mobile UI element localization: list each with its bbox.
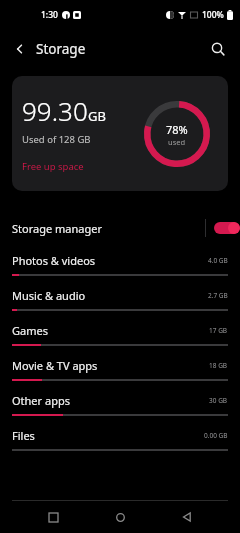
staticText: 100% [202,9,224,21]
staticText: GB [88,107,106,125]
button[interactable]: Home [106,503,134,531]
button[interactable]: Back [173,503,201,531]
staticText: 2.7 GB [208,291,228,300]
staticText: 30 GB [209,396,228,405]
staticText: 78% [166,122,188,137]
button[interactable]: Other apps [0,385,240,420]
button[interactable]: Photos & videos [0,245,240,280]
button[interactable]: Files [0,420,240,455]
button[interactable]: Music & audio [0,280,240,315]
staticText: Movie & TV apps [12,358,98,373]
staticText: 17 GB [209,326,228,335]
button[interactable]: Games [0,315,240,350]
staticText: Storage [36,40,86,58]
button[interactable]: Movie & TV apps [0,350,240,385]
staticText: used [168,137,186,147]
staticText: Photos & videos [12,253,96,268]
staticText: Storage manager [12,221,102,236]
button[interactable]: Search [204,35,232,63]
staticText: Music & audio [12,288,86,303]
staticText: Games [12,323,48,338]
button[interactable]: Storage manager toggle [214,222,240,234]
staticText: 18 GB [209,361,228,370]
button[interactable]: Storage manager [0,211,240,245]
staticText: Free up space [22,160,84,173]
button[interactable]: Navigate up [6,35,34,63]
staticText: Other apps [12,393,70,408]
staticText: Used of 128 GB [22,133,91,146]
staticText: 0.00 GB [204,431,228,440]
button[interactable]: Free up space [22,160,84,173]
button[interactable]: 99.30 [12,76,228,191]
staticText: 4.0 GB [208,256,228,265]
button[interactable]: Recent apps [39,503,67,531]
staticText: Files [12,428,35,443]
staticText: 1:30 [41,9,58,21]
staticText: 99.30 [22,93,88,128]
